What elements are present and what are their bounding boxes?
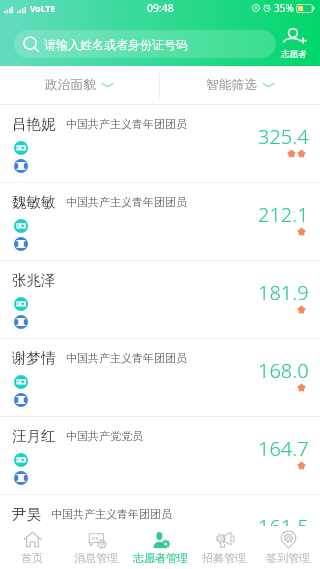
- staticText: 张兆泽: [12, 271, 56, 289]
- staticText: 消息管理: [74, 551, 118, 565]
- button[interactable]: 请输入姓名或者身份证号码: [14, 30, 276, 58]
- staticText: 325.4: [258, 123, 309, 150]
- staticText: 中国共产主义青年团团员: [51, 507, 172, 521]
- button[interactable]: 汪月红: [0, 417, 320, 495]
- staticText: 吕艳妮: [12, 115, 56, 133]
- staticText: 中国共产主义青年团团员: [66, 351, 187, 365]
- button[interactable]: 吕艳妮: [0, 105, 320, 183]
- button[interactable]: 签到管理: [256, 526, 320, 569]
- button[interactable]: 谢梦情: [0, 339, 320, 417]
- staticText: 智能筛选: [206, 77, 258, 93]
- button[interactable]: 张兆泽: [0, 261, 320, 339]
- staticText: 尹昊: [12, 505, 41, 523]
- button[interactable]: 添加志愿者: [281, 28, 307, 60]
- staticText: 164.7: [258, 435, 309, 462]
- button[interactable]: 政治面貌: [0, 66, 159, 104]
- staticText: 谢梦情: [12, 349, 56, 367]
- staticText: 政治面貌: [45, 77, 97, 93]
- button[interactable]: 智能筛选: [160, 66, 320, 104]
- staticText: 35%: [274, 1, 294, 15]
- button[interactable]: 招募管理: [192, 526, 256, 569]
- button[interactable]: 尹昊: [0, 495, 320, 569]
- staticText: 212.1: [258, 201, 309, 228]
- staticText: 中国共产党党员: [66, 429, 143, 443]
- staticText: 志愿者: [281, 49, 307, 60]
- staticText: 签到管理: [266, 551, 310, 565]
- staticText: 中国共产主义青年团团员: [66, 195, 187, 209]
- staticText: 09:48: [147, 1, 174, 15]
- staticText: 请输入姓名或者身份证号码: [44, 37, 188, 52]
- button[interactable]: 魏敏敏: [0, 183, 320, 261]
- staticText: 招募管理: [202, 551, 246, 565]
- staticText: VoLTE: [30, 3, 55, 15]
- button[interactable]: 首页: [0, 526, 64, 569]
- staticText: 161.5: [258, 513, 309, 540]
- staticText: 魏敏敏: [12, 193, 56, 211]
- button[interactable]: 消息管理: [64, 526, 128, 569]
- button[interactable]: 志愿者管理: [128, 526, 192, 569]
- staticText: 汪月红: [12, 427, 56, 445]
- staticText: 中国共产主义青年团团员: [66, 117, 187, 131]
- staticText: 181.9: [258, 279, 309, 306]
- staticText: 首页: [21, 551, 43, 565]
- staticText: 志愿者管理: [133, 551, 188, 565]
- staticText: 168.0: [258, 357, 309, 384]
